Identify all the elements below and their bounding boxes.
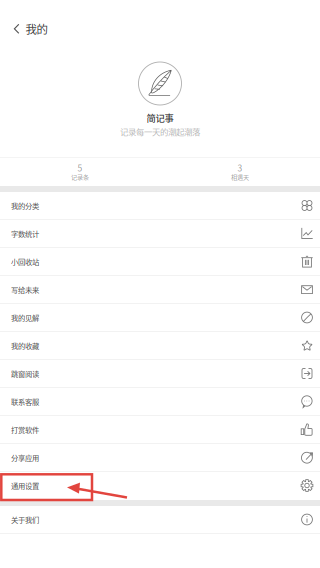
button[interactable]: 联系客服 <box>0 388 320 416</box>
staticText: 相遇天 <box>231 172 249 181</box>
staticText: 记录每一天的潮起潮落 <box>120 125 200 138</box>
button[interactable]: 小回收站 <box>0 248 320 276</box>
button[interactable]: 写给未来 <box>0 276 320 304</box>
staticText: 小回收站 <box>11 256 39 267</box>
staticText: 我的收藏 <box>11 340 39 351</box>
button[interactable]: 我的 <box>0 0 58 46</box>
staticText: 记录条 <box>71 172 89 181</box>
staticText: 简记事 <box>146 111 173 124</box>
button[interactable]: 分享应用 <box>0 444 320 472</box>
staticText: 5 <box>77 161 82 174</box>
staticText: 跳窗阅读 <box>11 368 39 379</box>
staticText: 分享应用 <box>11 452 39 463</box>
button[interactable]: 字数统计 <box>0 220 320 248</box>
staticText: 3 <box>237 161 242 174</box>
button[interactable]: 3 <box>160 158 320 186</box>
staticText: 通用设置 <box>11 480 39 491</box>
button[interactable]: 我的见解 <box>0 304 320 332</box>
button[interactable]: 打赏软件 <box>0 416 320 444</box>
staticText: 联系客服 <box>11 396 39 407</box>
staticText: 关于我们 <box>11 514 39 525</box>
staticText: 写给未来 <box>11 284 39 295</box>
button[interactable]: 关于我们 <box>0 506 320 534</box>
staticText: 打赏软件 <box>11 424 39 435</box>
button[interactable]: 5 <box>0 158 160 186</box>
button[interactable]: 通用设置 <box>0 472 320 500</box>
button[interactable]: 我的分类 <box>0 192 320 220</box>
button[interactable]: 我的收藏 <box>0 332 320 360</box>
staticText: 我的分类 <box>11 200 39 211</box>
staticText: 我的 <box>26 20 48 37</box>
staticText: 我的见解 <box>11 312 39 323</box>
button[interactable]: 跳窗阅读 <box>0 360 320 388</box>
staticText: 字数统计 <box>11 228 39 239</box>
